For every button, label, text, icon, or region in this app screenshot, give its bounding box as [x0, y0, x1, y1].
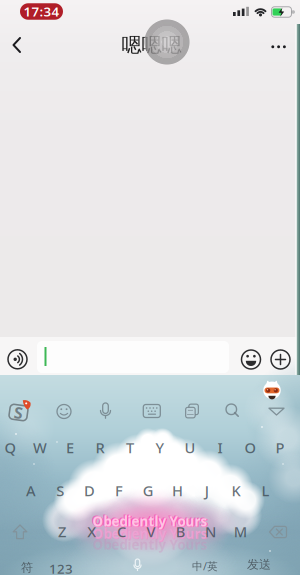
staticText: W [33, 438, 47, 457]
staticText: 17:34 [23, 2, 59, 20]
staticText: C [117, 522, 126, 541]
staticText: 123 [49, 560, 73, 575]
staticText: H [172, 481, 183, 500]
staticText: A [26, 481, 36, 500]
staticText: M [234, 522, 247, 541]
staticText: S [56, 481, 64, 500]
staticText: 发送 [247, 557, 271, 572]
staticText: Obediently Yours [92, 536, 207, 553]
staticText: G [143, 481, 154, 500]
staticText: X [87, 522, 96, 541]
staticText: Obediently Yours [94, 513, 209, 530]
staticText: Obediently Yours [91, 511, 206, 529]
staticText: O [244, 438, 255, 457]
staticText: I [217, 438, 222, 457]
staticText: B [176, 522, 186, 541]
staticText: Obediently Yours [93, 525, 208, 543]
staticText: Obediently Yours [92, 513, 207, 531]
staticText: J [205, 481, 209, 500]
staticText: R [95, 438, 104, 457]
staticText: F [115, 481, 123, 500]
staticText: Obediently Yours [92, 512, 207, 530]
staticText: S [14, 402, 23, 423]
staticText: P [275, 438, 284, 457]
staticText: 符 [21, 560, 33, 575]
staticText: V [147, 522, 156, 541]
staticText: U [184, 438, 195, 457]
staticText: 二 [187, 408, 194, 417]
staticText: D [84, 481, 95, 500]
staticText: N [205, 522, 216, 541]
staticText: Z [58, 522, 66, 541]
staticText: Obediently Yours [92, 525, 207, 542]
staticText: K [232, 481, 241, 500]
staticText: E [66, 438, 74, 457]
staticText: T [126, 438, 134, 457]
staticText: Q [4, 438, 15, 457]
staticText: 中/英 [192, 559, 218, 573]
staticText: L [261, 481, 269, 500]
staticText: Y [155, 438, 164, 457]
staticText: 嗯嗯嗯 [121, 33, 181, 57]
